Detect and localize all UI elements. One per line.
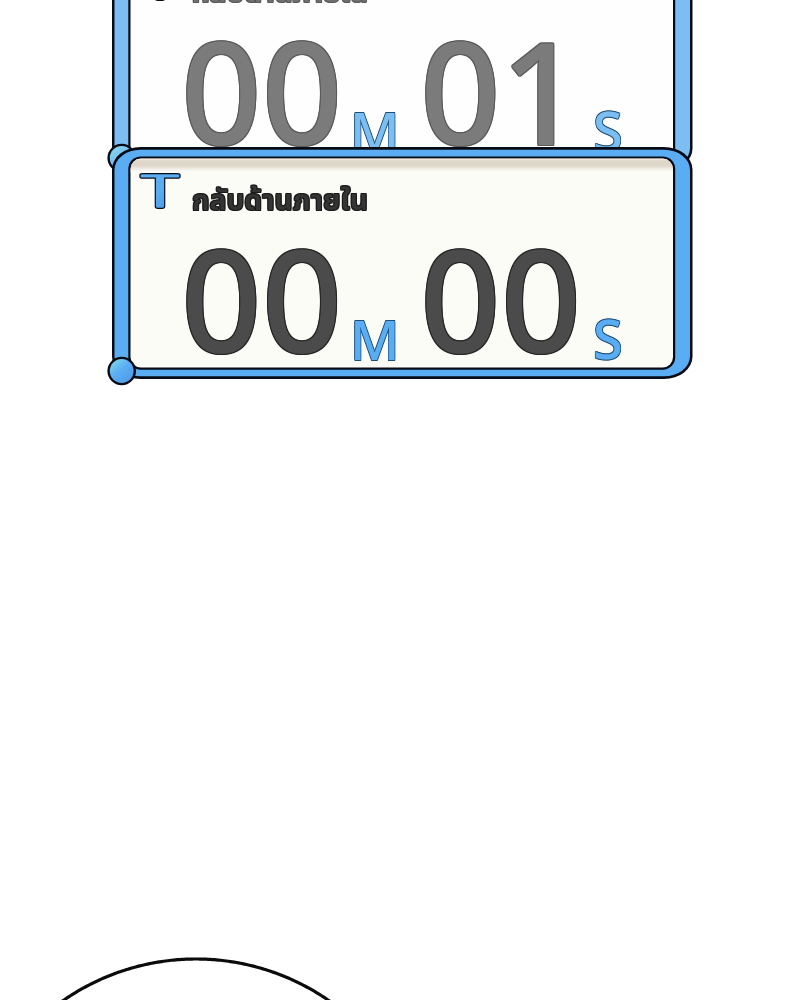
- button[interactable]: Timer 00 minutes 01 seconds: [0, 0, 800, 1000]
- button[interactable]: Timer inside out, 00 minutes 00 seconds: [0, 0, 800, 1000]
